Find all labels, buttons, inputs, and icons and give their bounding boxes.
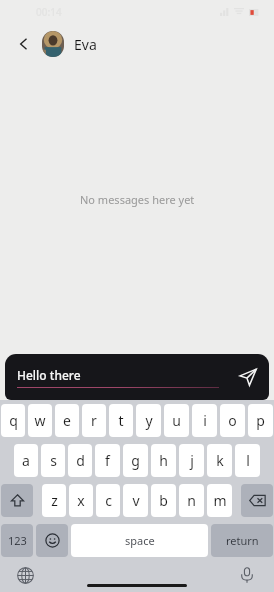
button[interactable]: s <box>41 444 65 477</box>
button[interactable]: h <box>151 444 176 477</box>
staticText: p <box>256 411 265 430</box>
staticText: b <box>159 491 168 510</box>
button[interactable]: Profile photo <box>42 31 64 57</box>
staticText: u <box>172 411 181 430</box>
staticText: return <box>226 533 259 548</box>
button[interactable]: Send <box>227 356 269 398</box>
staticText: c <box>105 491 112 510</box>
button[interactable]: Emoji <box>36 524 68 557</box>
staticText: v <box>132 491 140 510</box>
staticText: t <box>118 411 124 430</box>
staticText: e <box>63 411 71 430</box>
button[interactable]: return <box>211 524 273 557</box>
staticText: 00:14 <box>36 5 62 19</box>
button[interactable]: Voice input <box>230 558 264 592</box>
button[interactable]: b <box>151 484 176 517</box>
button[interactable]: Backspace <box>241 484 273 517</box>
staticText: s <box>50 451 57 470</box>
staticText: d <box>76 451 85 470</box>
button[interactable]: t <box>109 404 133 437</box>
button[interactable]: p <box>248 404 273 437</box>
staticText: n <box>187 491 196 510</box>
staticText: f <box>105 451 110 470</box>
staticText: a <box>22 451 30 470</box>
button[interactable]: v <box>123 484 148 517</box>
button[interactable]: j <box>179 444 204 477</box>
staticText: o <box>228 411 237 430</box>
button[interactable]: y <box>136 404 161 437</box>
staticText: r <box>91 411 97 430</box>
staticText: k <box>216 451 224 470</box>
staticText: space <box>125 533 155 548</box>
staticText: h <box>159 451 168 470</box>
staticText: x <box>77 491 85 510</box>
button[interactable]: q <box>1 404 25 437</box>
button[interactable]: i <box>192 404 217 437</box>
button[interactable]: u <box>164 404 189 437</box>
staticText: i <box>203 411 207 430</box>
button[interactable]: Change keyboard language <box>8 558 42 592</box>
staticText: No messages here yet <box>80 192 195 207</box>
button[interactable]: space <box>71 524 208 557</box>
button[interactable]: 123 <box>1 524 33 557</box>
button[interactable]: e <box>55 404 79 437</box>
button[interactable]: w <box>28 404 52 437</box>
staticText: g <box>131 451 140 470</box>
button[interactable]: x <box>69 484 93 517</box>
button[interactable]: k <box>207 444 232 477</box>
staticText: Hello there <box>17 367 81 383</box>
button[interactable]: d <box>68 444 92 477</box>
staticText: l <box>246 451 250 470</box>
button[interactable]: o <box>220 404 245 437</box>
button[interactable]: Hello there <box>17 367 227 388</box>
button[interactable]: Eva <box>74 35 97 54</box>
button[interactable]: Shift <box>1 484 33 517</box>
button[interactable]: g <box>123 444 148 477</box>
button[interactable]: f <box>95 444 120 477</box>
staticText: q <box>9 411 18 430</box>
button[interactable]: a <box>14 444 38 477</box>
staticText: j <box>190 451 194 470</box>
button[interactable]: m <box>207 484 232 517</box>
staticText: 123 <box>8 533 27 548</box>
button[interactable]: l <box>235 444 260 477</box>
staticText: y <box>145 411 153 430</box>
staticText: z <box>51 491 58 510</box>
staticText: w <box>34 411 46 430</box>
button[interactable]: z <box>42 484 66 517</box>
button[interactable]: c <box>96 484 120 517</box>
button[interactable]: Back <box>10 30 38 58</box>
staticText: m <box>213 491 227 510</box>
button[interactable]: n <box>179 484 204 517</box>
button[interactable]: r <box>82 404 106 437</box>
